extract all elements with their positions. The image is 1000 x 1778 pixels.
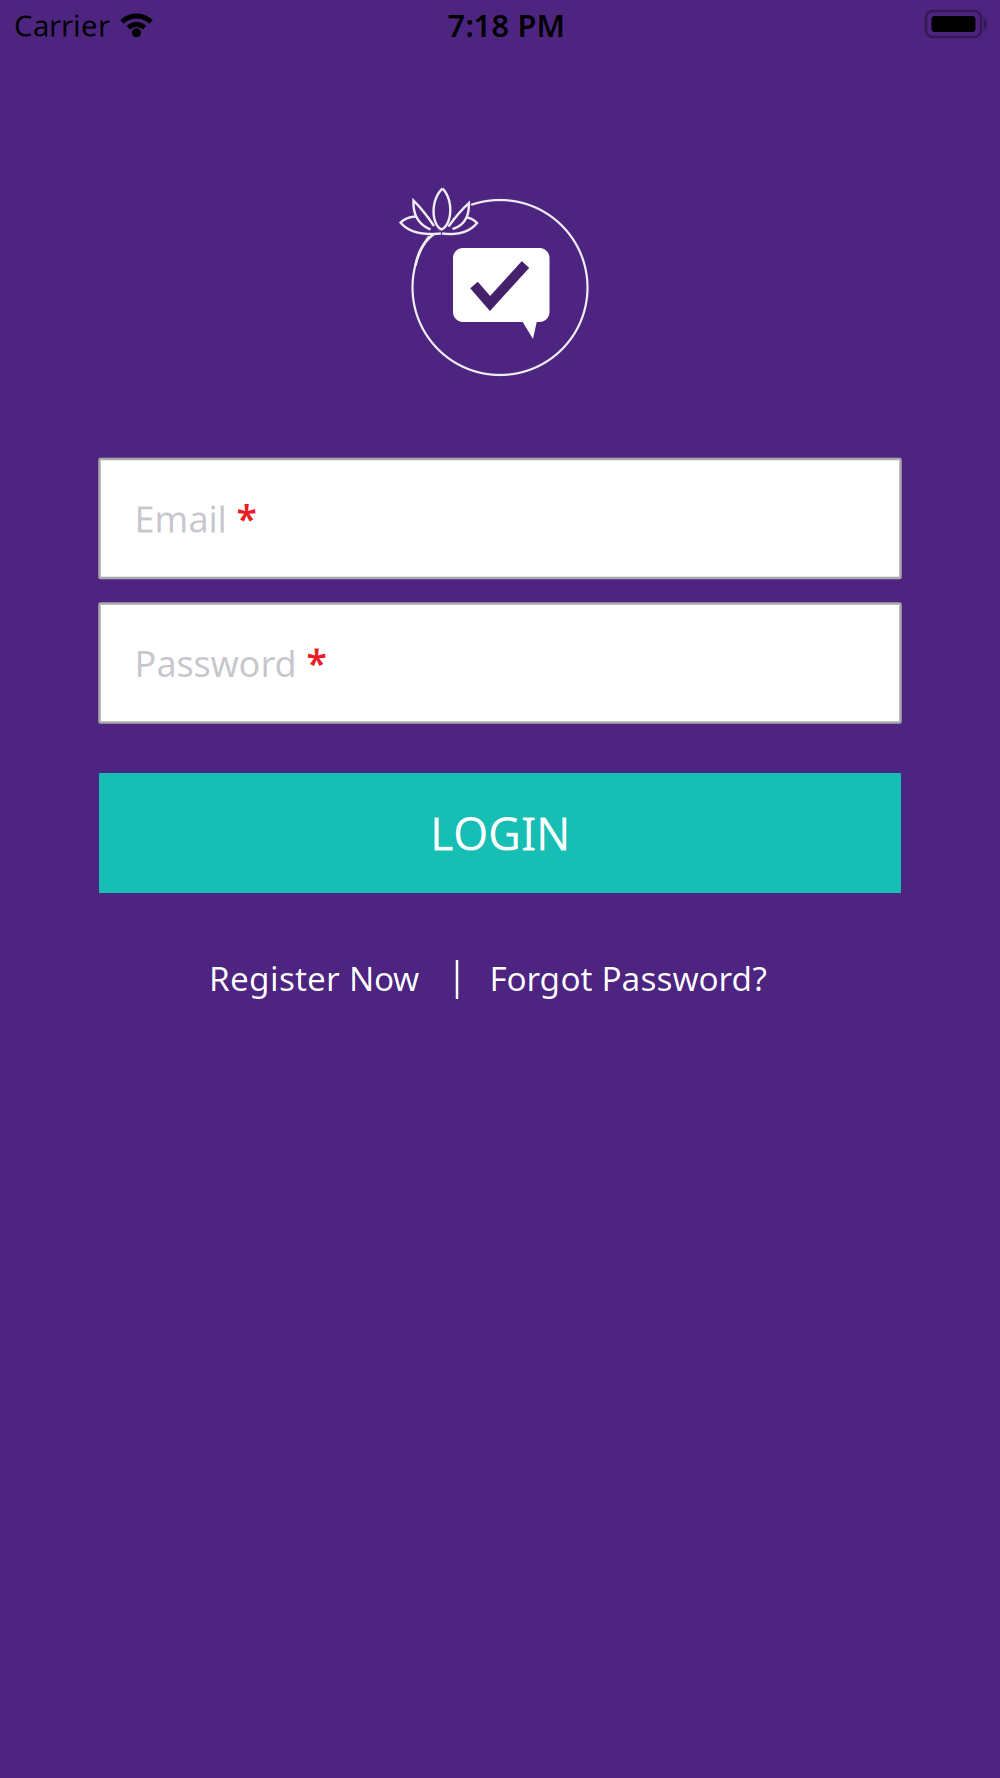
- staticText: *: [306, 638, 326, 688]
- staticText: LOGIN: [430, 803, 570, 863]
- button[interactable]: Register Now: [209, 956, 419, 1000]
- staticText: Carrier: [14, 5, 110, 44]
- button[interactable]: Forgot Password?: [489, 956, 766, 1000]
- button[interactable]: Email: [99, 459, 900, 578]
- staticText: *: [236, 494, 256, 543]
- button[interactable]: LOGIN: [99, 773, 901, 893]
- staticText: 7:18 PM: [447, 5, 564, 45]
- staticText: Password: [134, 639, 296, 687]
- staticText: Forgot Password?: [489, 956, 766, 1000]
- staticText: Register Now: [209, 956, 419, 1000]
- staticText: Email: [134, 495, 226, 542]
- button[interactable]: Password: [99, 603, 900, 722]
